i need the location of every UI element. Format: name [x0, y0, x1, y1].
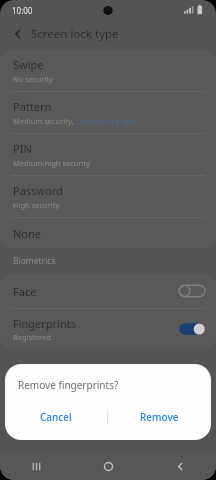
staticText: 10:00 [12, 5, 33, 16]
staticText: Remove fingerprints? [18, 378, 119, 392]
button[interactable]: On [179, 322, 205, 336]
button[interactable]: Back [8, 24, 28, 44]
staticText: Password [13, 183, 63, 198]
button[interactable]: Fingerprints [0, 309, 216, 349]
button[interactable]: Recents [0, 452, 72, 480]
staticText: Face [13, 284, 37, 299]
staticText: PIN [13, 141, 32, 156]
staticText: Fingerprints [13, 316, 77, 331]
button[interactable]: PIN [0, 134, 216, 175]
staticText: Medium-high security [13, 158, 91, 168]
button[interactable]: None [0, 218, 216, 248]
staticText: Remove [140, 410, 179, 424]
button[interactable]: Back [144, 452, 216, 480]
staticText: Registered [13, 332, 51, 342]
staticText: Biometrics [13, 255, 56, 267]
staticText: None [13, 226, 42, 241]
staticText: Medium security, Current lock type [13, 116, 138, 126]
staticText: Cancel [40, 410, 72, 424]
button[interactable]: Off [179, 284, 205, 298]
staticText: High security [13, 200, 60, 210]
staticText: Swipe [13, 57, 44, 72]
button[interactable]: Home [72, 452, 144, 480]
staticText: No security [13, 74, 53, 84]
button[interactable]: Swipe [0, 50, 216, 91]
button[interactable]: Pattern [0, 92, 216, 133]
staticText: Pattern [13, 99, 52, 114]
button[interactable]: Face [0, 274, 216, 308]
button[interactable]: Remove [108, 404, 211, 430]
button[interactable]: Password [0, 176, 216, 217]
staticText: Screen lock type [31, 26, 119, 42]
button[interactable]: Cancel [5, 404, 107, 430]
